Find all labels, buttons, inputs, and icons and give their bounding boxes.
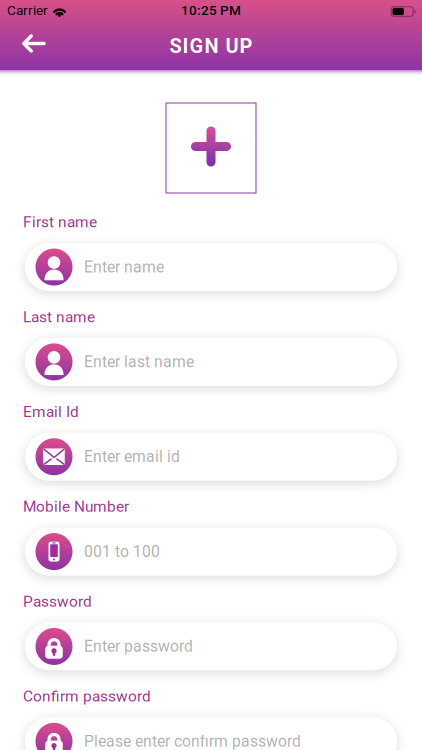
button[interactable]: Add photo xyxy=(166,103,256,193)
staticText: First name xyxy=(23,213,97,231)
staticText: SIGN UP xyxy=(169,34,252,58)
staticText: Enter password xyxy=(84,637,193,656)
staticText: Password xyxy=(23,592,92,610)
staticText: Confirm password xyxy=(23,687,151,705)
staticText: Carrier xyxy=(7,2,48,18)
button[interactable]: Enter last name xyxy=(25,338,397,386)
staticText: Email Id xyxy=(23,403,79,421)
button[interactable]: Please enter confirm password xyxy=(25,717,397,750)
button[interactable]: Back xyxy=(0,0,44,52)
staticText: Enter email id xyxy=(84,447,180,466)
staticText: 10:25 PM xyxy=(181,2,241,18)
staticText: Last name xyxy=(23,308,95,326)
staticText: Mobile Number xyxy=(23,497,129,515)
button[interactable]: Enter email id xyxy=(25,433,397,481)
button[interactable]: Enter name xyxy=(25,243,397,291)
staticText: Enter name xyxy=(84,258,164,276)
button[interactable]: 001 to 100 xyxy=(25,528,397,576)
staticText: Please enter confirm password xyxy=(84,732,301,750)
staticText: Enter last name xyxy=(84,353,194,371)
staticText: 001 to 100 xyxy=(84,542,160,561)
button[interactable]: Enter password xyxy=(25,622,397,670)
